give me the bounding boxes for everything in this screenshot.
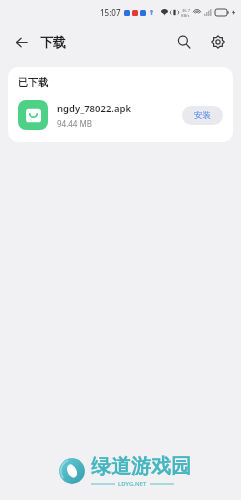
button[interactable]: 安装 [182,106,223,125]
staticText: 15:07 [100,7,121,18]
staticText: 36.7 [182,8,190,13]
staticText: KB/s [181,13,190,18]
button[interactable]: Search [171,29,197,55]
staticText: ngdy_78022.apk [57,102,132,115]
staticText: LDYG.NET [118,480,147,488]
staticText: 已下载 [18,76,48,89]
staticText: 94.44 MB [57,118,92,129]
staticText: 绿道游戏园 [91,454,191,479]
button[interactable]: Settings [205,29,231,55]
button[interactable]: ngdy_78022.apk [18,100,223,130]
staticText: 安装 [194,110,211,121]
button[interactable]: Back [8,29,34,55]
staticText: 下载 [40,34,66,50]
